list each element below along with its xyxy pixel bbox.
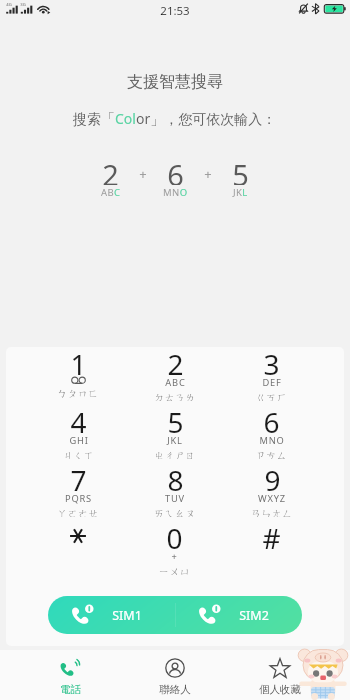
staticText: TUV	[165, 492, 185, 505]
button[interactable]: SIM1	[48, 596, 175, 634]
staticText: GHI	[69, 434, 89, 447]
staticText: 2	[167, 347, 184, 375]
staticText: #	[262, 519, 281, 549]
button[interactable]: 電話	[18, 654, 122, 700]
staticText: 支援智慧搜尋	[127, 72, 223, 92]
staticText: 7	[70, 461, 87, 491]
staticText: 6	[167, 155, 184, 185]
button[interactable]	[30, 517, 126, 575]
staticText: PQRS	[65, 492, 92, 505]
staticText: 2	[102, 155, 119, 185]
staticText: ABC	[165, 376, 186, 389]
staticText: SIM1	[112, 607, 142, 624]
staticText: 0	[166, 519, 183, 549]
staticText: JKL	[167, 434, 183, 447]
staticText: ㄅㄆㄇㄈ	[57, 387, 99, 400]
staticText: 聯絡人	[159, 683, 191, 696]
staticText: 1	[70, 347, 87, 375]
staticText: 3G	[20, 2, 26, 8]
staticText: 3	[263, 347, 280, 375]
button[interactable]: 2	[126, 347, 223, 401]
staticText: ㄧㄨㄩ	[159, 565, 190, 575]
staticText: ABC	[101, 186, 121, 199]
staticText: ㄢㄣㄤㄥ	[251, 507, 293, 517]
button[interactable]: 1	[30, 347, 126, 401]
staticText: 8	[167, 461, 184, 491]
staticText: JKL	[233, 186, 248, 199]
staticText: MNO	[163, 186, 188, 199]
staticText: SIM2	[239, 607, 269, 624]
button[interactable]: #	[223, 517, 320, 575]
staticText: ㄗㄘㄙ	[256, 449, 287, 459]
staticText: 9	[264, 461, 281, 491]
staticText: +	[139, 165, 147, 183]
staticText: ㄓㄔㄕㄖ	[154, 449, 196, 459]
staticText: MNO	[259, 434, 285, 447]
staticText: +	[204, 165, 212, 183]
staticText: ㄞㄟㄠㄡ	[154, 507, 196, 517]
staticText: 5	[232, 155, 249, 185]
staticText: DEF	[262, 376, 282, 389]
staticText: 21:53	[160, 3, 190, 19]
button[interactable]: 4	[30, 401, 126, 459]
staticText: 電話	[60, 683, 81, 696]
staticText: 5	[167, 403, 184, 433]
button[interactable]: 8	[126, 459, 223, 517]
staticText: WXYZ	[258, 492, 286, 505]
button[interactable]: 聯絡人	[122, 654, 227, 700]
staticText: ㄚㄛㄜㄝ	[57, 507, 99, 517]
staticText: 個人收藏	[259, 683, 301, 696]
staticText: 4G	[6, 2, 12, 8]
button[interactable]: 5	[126, 401, 223, 459]
staticText: 搜索「Color」，您可依次輸入：	[73, 109, 277, 128]
button[interactable]: 0	[126, 517, 223, 575]
button[interactable]: 9	[223, 459, 320, 517]
staticText: ㄍㄎㄏ	[256, 391, 287, 401]
button[interactable]: 3	[223, 347, 320, 401]
staticText: 6	[263, 403, 280, 433]
staticText: ㄐㄑㄒ	[63, 449, 94, 459]
staticText: +	[171, 550, 178, 563]
staticText: 4	[70, 403, 87, 433]
staticText: ㄉㄊㄋㄌ	[154, 391, 196, 401]
button[interactable]: 7	[30, 459, 126, 517]
button[interactable]: 6	[223, 401, 320, 459]
button[interactable]: SIM2	[175, 596, 302, 634]
button[interactable]: 個人收藏	[227, 654, 332, 700]
